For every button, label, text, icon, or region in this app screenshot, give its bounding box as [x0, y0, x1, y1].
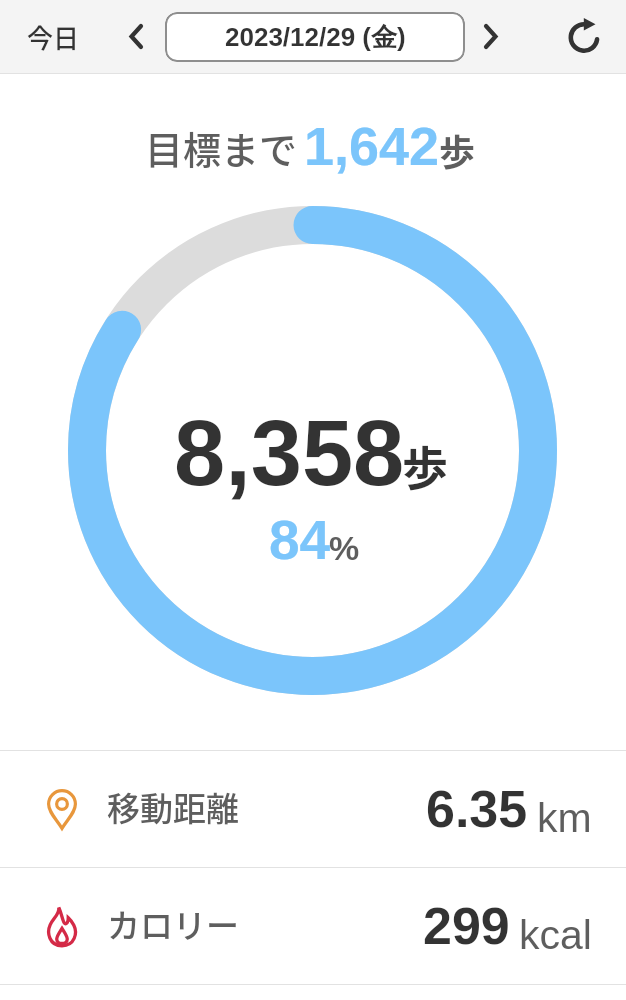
staticText: 8,358 — [174, 402, 405, 505]
button[interactable]: カロリー — [0, 868, 626, 984]
staticText: 目標まで — [145, 120, 298, 175]
staticText: 2023/12/29 (金) — [225, 21, 406, 54]
button[interactable]: 移動距離 — [0, 751, 626, 867]
staticText: 歩 — [439, 124, 476, 176]
staticText: 84 — [269, 509, 331, 570]
staticText: 299 — [423, 897, 510, 955]
staticText: 1,642 — [304, 116, 440, 176]
button[interactable]: 今日 — [0, 0, 107, 73]
button[interactable]: 2023/12/29 (金) — [165, 12, 465, 62]
staticText: 今日 — [27, 18, 80, 56]
button[interactable]: Next day — [465, 0, 517, 73]
staticText: kcal — [519, 912, 592, 958]
staticText: 歩 — [402, 432, 448, 499]
staticText: km — [537, 795, 592, 841]
staticText: 6.35 — [426, 780, 528, 838]
staticText: 移動距離 — [107, 783, 239, 831]
button[interactable]: Refresh — [553, 0, 615, 73]
button[interactable]: Previous day — [107, 0, 165, 73]
staticText: カロリー — [107, 900, 239, 948]
staticText: % — [329, 529, 360, 567]
